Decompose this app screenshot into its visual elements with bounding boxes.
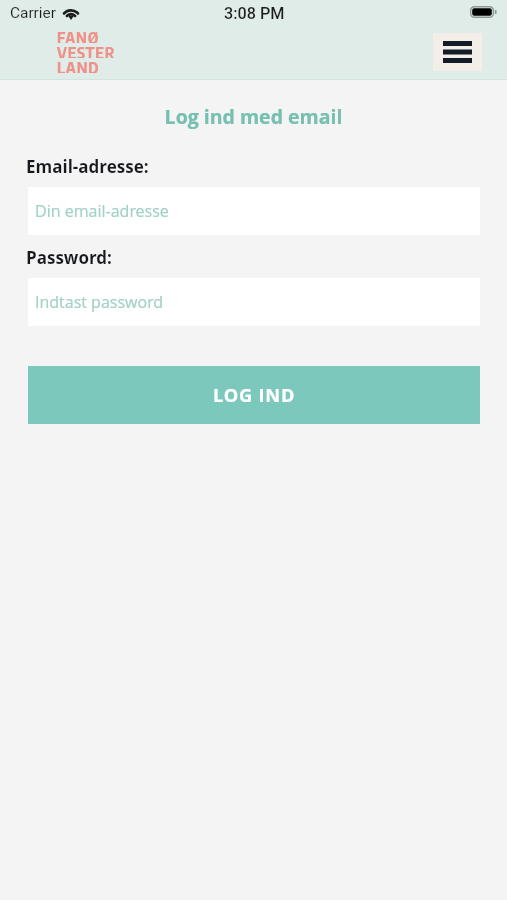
staticText: Log ind med email [0, 103, 507, 130]
staticText: Email-adresse: [26, 155, 149, 178]
button[interactable]: LOG IND [28, 366, 480, 424]
button[interactable]: Indtast password [28, 278, 480, 326]
staticText: 3:08 PM [224, 4, 285, 23]
button[interactable]: Din email-adresse [28, 187, 480, 235]
staticText: LOG IND [213, 383, 296, 408]
button[interactable]: Menu [433, 33, 482, 71]
staticText: Din email-adresse [35, 200, 169, 222]
staticText: Indtast password [35, 291, 164, 313]
staticText: Carrier [10, 4, 56, 22]
staticText: VESTER [57, 43, 116, 58]
staticText: FANØ [57, 28, 100, 43]
staticText: Password: [26, 246, 112, 269]
staticText: LAND [57, 58, 100, 73]
